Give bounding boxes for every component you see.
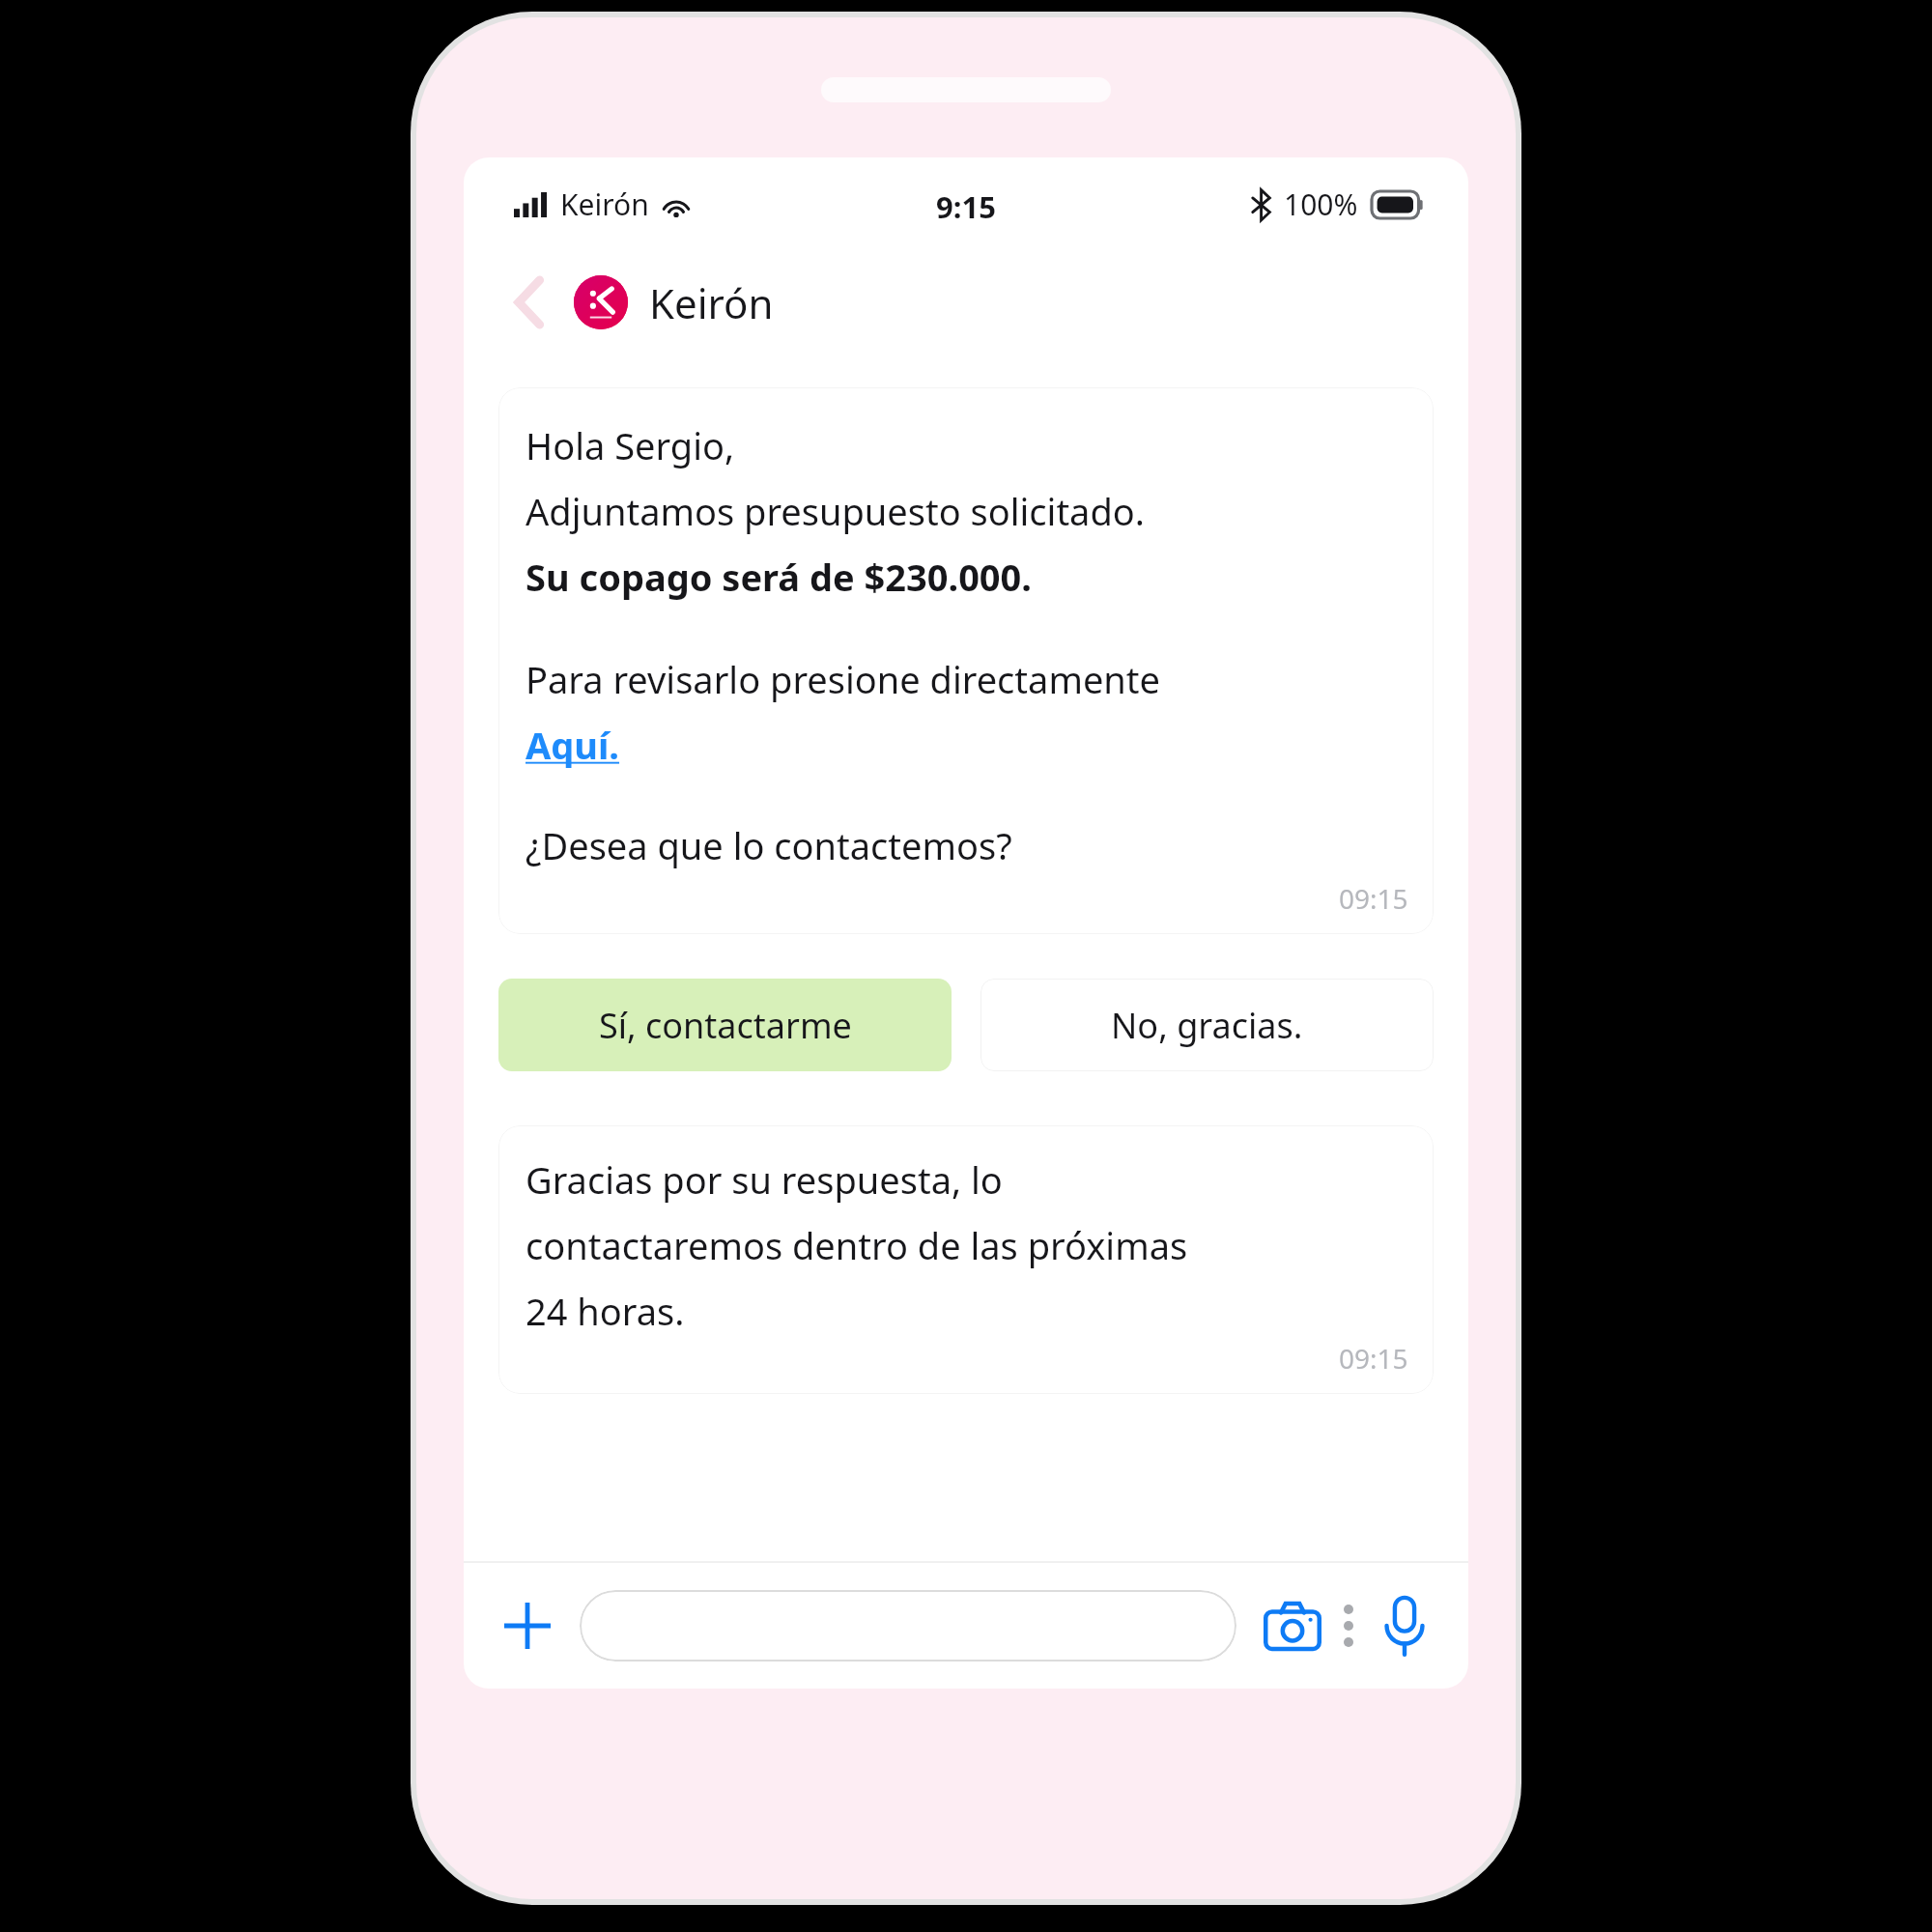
staticText: Gracias por su respuesta, lo — [526, 1154, 1003, 1205]
staticText: 09:15 — [1339, 880, 1408, 917]
button[interactable]: Gracias por su respuesta, lo — [498, 1125, 1434, 1394]
staticText: Keirón — [560, 185, 649, 224]
staticText: Aquí. — [526, 720, 620, 770]
staticText: 9:15 — [936, 186, 996, 227]
staticText: Adjuntamos presupuesto solicitado. — [526, 486, 1145, 536]
button[interactable]: No, gracias. — [980, 979, 1434, 1071]
button[interactable]: Sí, contactarme — [498, 979, 952, 1071]
button[interactable]: Camera — [1258, 1591, 1327, 1661]
button[interactable]: Aquí. — [526, 720, 620, 770]
staticText: 100% — [1284, 185, 1358, 224]
staticText: 09:15 — [1339, 1340, 1408, 1377]
button[interactable]: Back — [502, 274, 558, 330]
staticText: Sí, contactarme — [599, 1002, 852, 1049]
staticText: No, gracias. — [1111, 1002, 1303, 1049]
staticText: Keirón — [649, 275, 774, 330]
button[interactable]: Message input — [580, 1590, 1236, 1662]
staticText: 24 horas. — [526, 1286, 685, 1336]
button[interactable]: More options — [1327, 1605, 1370, 1647]
button[interactable]: Voice message — [1370, 1591, 1439, 1661]
staticText: ¿Desea que lo contactemos? — [526, 820, 1012, 870]
button[interactable]: Add attachment — [493, 1591, 562, 1661]
staticText: Para revisarlo presione directamente — [526, 654, 1160, 704]
button[interactable]: Hola Sergio, — [498, 387, 1434, 934]
staticText: Hola Sergio, — [526, 420, 735, 470]
staticText: contactaremos dentro de las próximas — [526, 1220, 1188, 1270]
staticText: Su copago será de $230.000. — [526, 552, 1033, 602]
